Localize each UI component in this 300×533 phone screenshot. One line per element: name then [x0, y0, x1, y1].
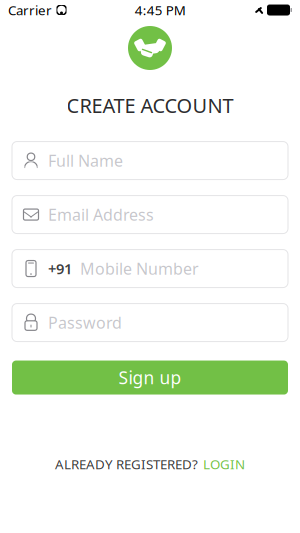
button[interactable]: Password	[12, 304, 288, 342]
button[interactable]: Mobile Number	[12, 250, 288, 288]
button[interactable]: Full Name	[12, 142, 288, 180]
staticText: +91	[48, 259, 72, 278]
button[interactable]: Sign up	[12, 361, 288, 395]
button[interactable]: ALREADY REGISTERED?	[55, 455, 245, 473]
staticText: Mobile Number	[80, 258, 199, 279]
button[interactable]: Email Address	[12, 196, 288, 234]
staticText: ALREADY REGISTERED?	[55, 455, 198, 473]
staticText: Carrier	[8, 1, 52, 19]
staticText: Password	[48, 312, 122, 333]
staticText: CREATE ACCOUNT	[66, 92, 233, 119]
staticText: Full Name	[48, 150, 123, 171]
staticText: Sign up	[118, 366, 181, 389]
staticText: Email Address	[48, 204, 154, 225]
staticText: LOGIN	[203, 455, 245, 473]
staticText: 4:45 PM	[135, 1, 186, 19]
